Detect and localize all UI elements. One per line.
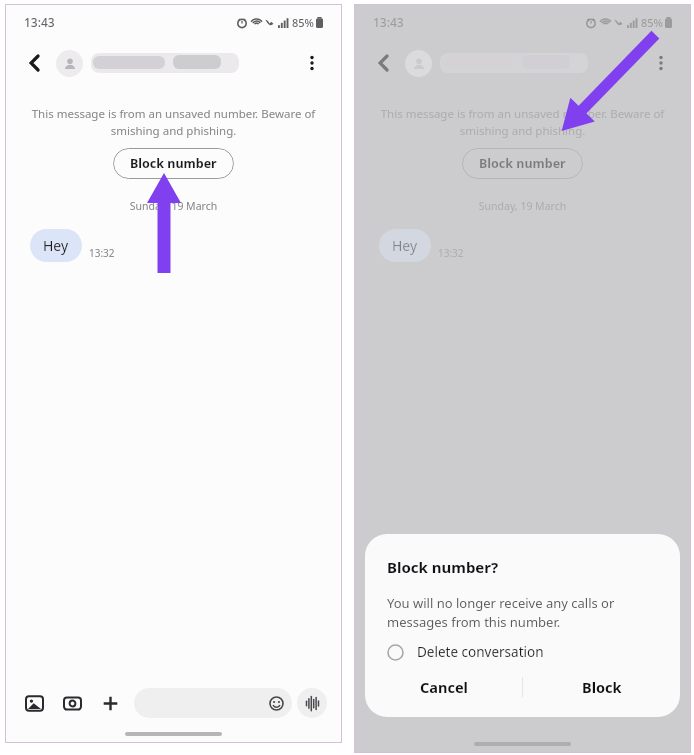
staticText: Block [582, 677, 622, 697]
staticText: Block number? [387, 557, 499, 577]
button[interactable]: Contact avatar [405, 50, 432, 77]
staticText: Sunday, 19 March [6, 199, 341, 213]
button[interactable]: Contact avatar [56, 50, 83, 77]
staticText: This message is from an unsaved number. … [30, 106, 317, 138]
button[interactable]: Block number [462, 148, 583, 179]
button[interactable]: Hey [379, 229, 431, 262]
button[interactable]: Back [367, 46, 401, 80]
button[interactable]: More options [644, 46, 678, 80]
button[interactable]: Emoji [263, 690, 289, 716]
button[interactable]: More options [295, 46, 329, 80]
staticText: 13:32 [438, 246, 464, 260]
staticText: Hey [43, 236, 69, 255]
staticText: Cancel [420, 677, 468, 697]
button[interactable]: More [96, 689, 124, 717]
button[interactable]: Block [523, 663, 680, 711]
button[interactable]: Emoji [134, 688, 292, 718]
staticText: Sunday, 19 March [355, 199, 690, 213]
staticText: Hey [392, 236, 418, 255]
staticText: 85% [641, 15, 663, 30]
staticText: Delete conversation [417, 643, 544, 661]
button[interactable]: Attach image [20, 689, 48, 717]
button[interactable]: Back [18, 46, 52, 80]
staticText: Block number [130, 155, 217, 172]
staticText: Block number [479, 155, 566, 172]
staticText: 13:43 [24, 14, 55, 30]
button[interactable]: Cancel [365, 663, 522, 711]
staticText: This message is from an unsaved number. … [379, 106, 666, 138]
staticText: You will no longer receive any calls or … [387, 594, 652, 631]
staticText: 13:43 [373, 14, 404, 30]
button[interactable]: Voice message [297, 688, 327, 718]
button[interactable]: Delete conversation [365, 641, 680, 663]
staticText: 13:32 [89, 246, 115, 260]
button[interactable]: Block number [113, 148, 234, 179]
staticText: 85% [292, 15, 314, 30]
button[interactable]: Hey [30, 229, 82, 262]
button[interactable]: Camera [58, 689, 86, 717]
